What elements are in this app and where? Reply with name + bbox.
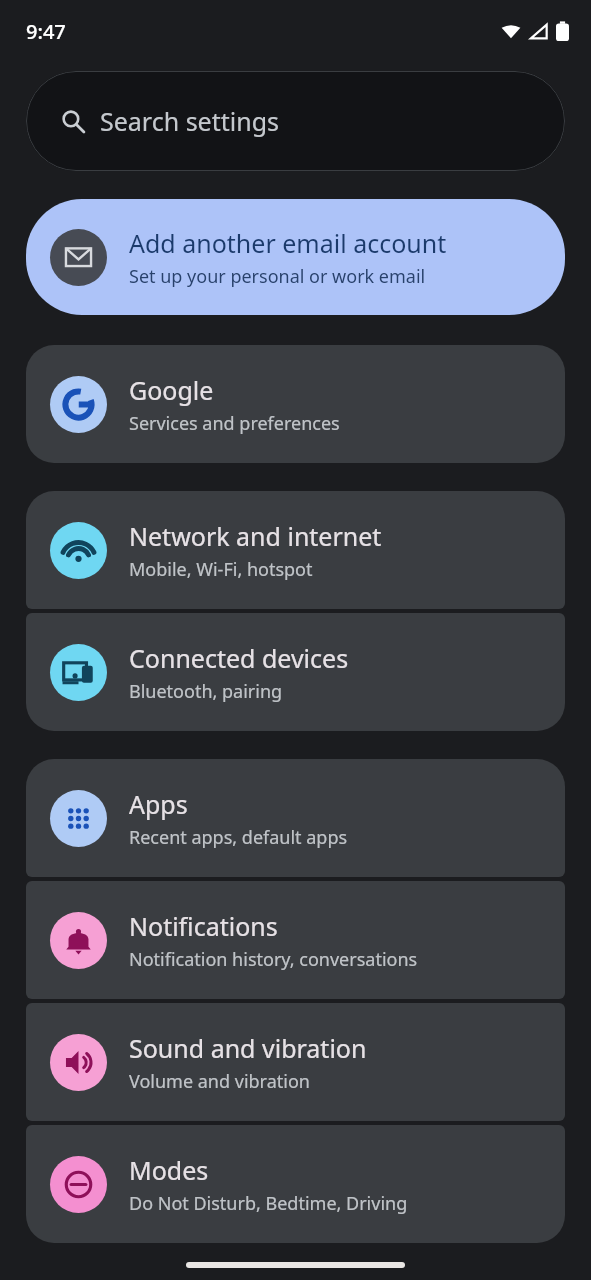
staticText: Connected devices bbox=[129, 641, 349, 675]
staticText: Mobile, Wi-Fi, hotspot bbox=[129, 557, 313, 582]
staticText: Modes bbox=[129, 1153, 209, 1187]
button[interactable]: Notifications bbox=[26, 881, 565, 999]
staticText: Google bbox=[129, 373, 214, 407]
staticText: Volume and vibration bbox=[129, 1069, 310, 1094]
other: Google bbox=[50, 376, 107, 433]
staticText: Services and preferences bbox=[129, 411, 340, 436]
staticText: Search settings bbox=[100, 104, 280, 138]
staticText: Add another email account bbox=[129, 226, 447, 260]
other: Email bbox=[50, 229, 107, 286]
staticText: 9:47 bbox=[26, 18, 66, 45]
other: Sound and vibration bbox=[50, 1034, 107, 1091]
staticText: Set up your personal or work email bbox=[129, 264, 426, 289]
staticText: Network and internet bbox=[129, 519, 382, 553]
other: Connected devices bbox=[50, 644, 107, 701]
button[interactable]: Connected devices bbox=[26, 613, 565, 731]
button[interactable]: Network and internet bbox=[26, 491, 565, 609]
other: Modes bbox=[50, 1156, 107, 1213]
other: Network and internet bbox=[50, 522, 107, 579]
staticText: Notifications bbox=[129, 909, 278, 943]
button[interactable]: Search settings bbox=[26, 71, 565, 171]
other: Apps bbox=[50, 790, 107, 847]
staticText: Sound and vibration bbox=[129, 1031, 367, 1065]
staticText: Apps bbox=[129, 787, 188, 821]
button[interactable]: Email bbox=[26, 199, 565, 315]
button[interactable]: Google bbox=[26, 345, 565, 463]
staticText: Notification history, conversations bbox=[129, 947, 418, 972]
other: Notifications bbox=[50, 912, 107, 969]
staticText: Do Not Disturb, Bedtime, Driving bbox=[129, 1191, 408, 1216]
button[interactable]: Sound and vibration bbox=[26, 1003, 565, 1121]
button[interactable]: Apps bbox=[26, 759, 565, 877]
staticText: Bluetooth, pairing bbox=[129, 679, 283, 704]
button[interactable]: Modes bbox=[26, 1125, 565, 1243]
staticText: Recent apps, default apps bbox=[129, 825, 348, 850]
